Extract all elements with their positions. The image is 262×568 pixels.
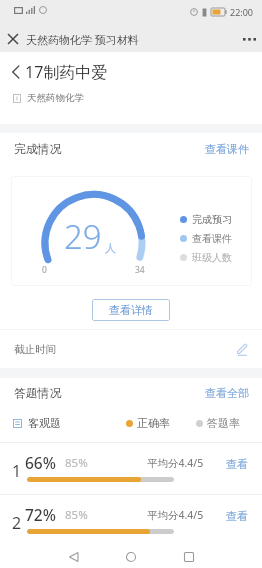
staticText: 截止时间 bbox=[14, 343, 56, 356]
staticText: 正确率 bbox=[137, 416, 170, 430]
staticText: 完成预习 bbox=[192, 213, 232, 226]
button[interactable]: 1 bbox=[0, 442, 262, 494]
staticText: 查看 bbox=[226, 509, 248, 523]
button[interactable]: 主页 bbox=[118, 545, 144, 568]
staticText: 查看课件 bbox=[205, 142, 249, 156]
staticText: 0 bbox=[42, 264, 47, 276]
staticText: 查看全部 bbox=[205, 386, 249, 400]
button[interactable]: 最近任务 bbox=[176, 545, 202, 568]
staticText: 平均分4.4/5 bbox=[147, 508, 204, 522]
staticText: 班级人数 bbox=[192, 251, 232, 264]
button[interactable]: 更多 bbox=[236, 26, 262, 52]
staticText: 答题率 bbox=[207, 416, 240, 430]
staticText: 查看详情 bbox=[109, 303, 153, 317]
button[interactable]: 查看详情 bbox=[92, 299, 170, 321]
staticText: 人 bbox=[105, 241, 116, 255]
button[interactable]: 查看 bbox=[220, 453, 254, 475]
staticText: 29 bbox=[64, 214, 102, 259]
button[interactable]: 查看 bbox=[220, 505, 254, 527]
staticText: 查看 bbox=[226, 457, 248, 471]
staticText: 17制药中爱 bbox=[25, 61, 108, 83]
staticText: 2 bbox=[12, 512, 22, 534]
staticText: 完成情况 bbox=[14, 142, 62, 157]
staticText: 22:00 bbox=[230, 6, 254, 18]
button[interactable]: 查看课件 bbox=[192, 138, 262, 160]
staticText: 答题情况 bbox=[14, 386, 62, 401]
button[interactable]: 截止时间 bbox=[0, 330, 262, 368]
staticText: 天然药物化学 bbox=[27, 92, 84, 104]
button[interactable]: 关闭 bbox=[0, 26, 26, 52]
button[interactable]: 返回 bbox=[60, 545, 86, 568]
staticText: 72% bbox=[25, 504, 56, 525]
staticText: 1 bbox=[12, 460, 22, 482]
staticText: 85% bbox=[65, 507, 88, 523]
staticText: 34 bbox=[135, 264, 145, 276]
staticText: 平均分4.4/5 bbox=[147, 456, 204, 470]
staticText: 66% bbox=[25, 452, 56, 473]
staticText: 85% bbox=[65, 455, 88, 471]
staticText: 天然药物化学 预习材料 bbox=[26, 32, 139, 47]
button[interactable]: 查看全部 bbox=[192, 382, 262, 404]
staticText: 客观题 bbox=[28, 416, 61, 430]
staticText: 查看课件 bbox=[192, 232, 232, 245]
button[interactable]: 2 bbox=[0, 494, 262, 546]
